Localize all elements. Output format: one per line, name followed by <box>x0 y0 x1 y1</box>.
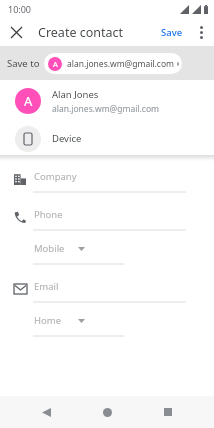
staticText: Save <box>161 26 183 39</box>
staticText: First name <box>34 98 82 111</box>
staticText: alan.jones.wm@gmail.com <box>67 58 175 70</box>
button[interactable]: A <box>44 53 182 74</box>
staticText: Email <box>34 280 59 293</box>
staticText: Mobile <box>34 242 65 255</box>
staticText: Phone <box>34 208 63 221</box>
staticText: Home <box>34 314 62 327</box>
button[interactable]: Phone <box>0 200 214 234</box>
button[interactable]: Close <box>4 20 28 44</box>
staticText: alan.jones.wm@gmail.com <box>52 103 160 115</box>
button[interactable]: Home <box>92 397 122 427</box>
staticText: Surname <box>34 132 75 145</box>
staticText: 10:00 <box>8 3 32 15</box>
button[interactable]: Save <box>157 23 187 42</box>
staticText: A <box>24 92 33 110</box>
staticText: Save to <box>7 57 40 70</box>
button[interactable]: Surname <box>0 124 214 158</box>
button[interactable]: A <box>0 80 214 122</box>
staticText: A <box>53 59 58 69</box>
button[interactable]: Email <box>0 272 214 306</box>
staticText: Device <box>52 132 82 145</box>
button[interactable]: More options <box>190 21 212 43</box>
staticText: Alan Jones <box>52 88 99 101</box>
button[interactable]: Home <box>0 306 214 340</box>
button[interactable]: First name <box>0 90 214 124</box>
staticText: Create contact <box>38 24 124 41</box>
button[interactable]: Mobile <box>0 234 214 268</box>
staticText: Company <box>34 170 77 183</box>
button[interactable]: Device <box>0 122 214 155</box>
button[interactable]: Back <box>31 397 61 427</box>
button[interactable]: Recent apps <box>153 397 183 427</box>
button[interactable]: Company <box>0 162 214 196</box>
